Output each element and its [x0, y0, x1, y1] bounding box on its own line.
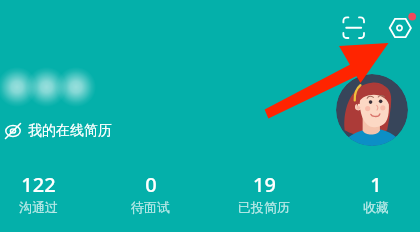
- button[interactable]: 122: [0, 171, 86, 221]
- button[interactable]: 1: [328, 171, 420, 221]
- staticText: 我的在线简历: [28, 122, 112, 140]
- staticText: 收藏: [363, 199, 389, 215]
- button[interactable]: Avatar: [336, 74, 408, 146]
- staticText: 19: [253, 171, 276, 198]
- staticText: 待面试: [131, 199, 170, 215]
- staticText: 已投简历: [238, 199, 290, 215]
- staticText: 1: [370, 171, 382, 198]
- button[interactable]: 0: [102, 171, 198, 221]
- button[interactable]: 19: [216, 171, 312, 221]
- button[interactable]: User name: [0, 60, 100, 116]
- staticText: 122: [21, 171, 56, 198]
- staticText: 0: [145, 171, 157, 198]
- button[interactable]: Scan: [335, 9, 372, 46]
- button[interactable]: Settings: [382, 9, 420, 47]
- staticText: 沟通过: [19, 199, 58, 215]
- button[interactable]: 我的在线简历: [2, 118, 112, 144]
